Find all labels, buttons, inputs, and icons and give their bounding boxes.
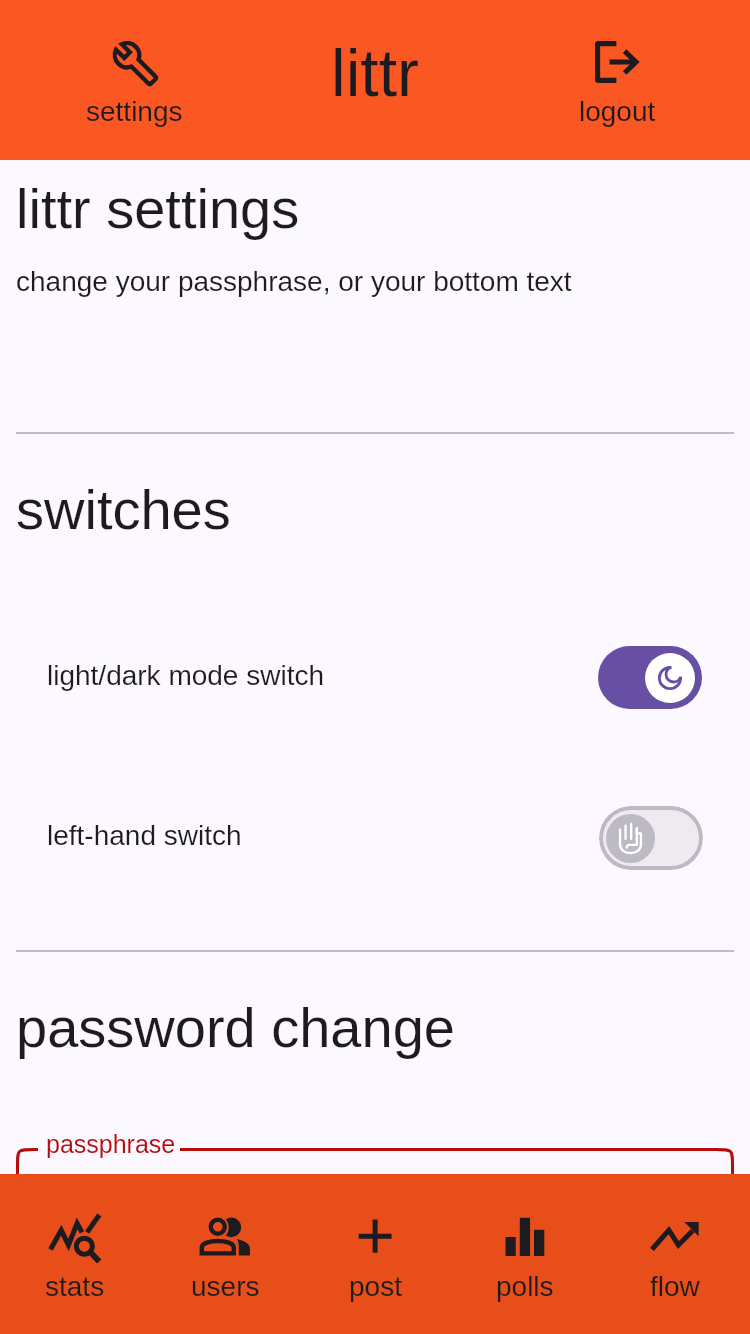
staticText: light/dark mode switch <box>47 660 325 691</box>
staticText: passphrase <box>46 1130 176 1158</box>
button[interactable]: polls <box>450 1174 600 1334</box>
button[interactable]: flow <box>600 1174 750 1334</box>
button[interactable]: settings <box>82 26 186 134</box>
button[interactable]: Toggle left-hand mode <box>599 806 703 870</box>
staticText: left-hand switch <box>47 820 242 851</box>
staticText: change your passphrase, or your bottom t… <box>16 266 572 297</box>
staticText: switches <box>16 478 231 541</box>
staticText: post <box>349 1271 402 1302</box>
button[interactable] <box>16 1148 734 1268</box>
staticText: users <box>191 1271 260 1302</box>
button[interactable]: stats <box>0 1174 150 1334</box>
button[interactable]: users <box>150 1174 300 1334</box>
staticText: settings <box>86 96 183 127</box>
button[interactable]: logout <box>565 26 669 134</box>
staticText: password change <box>16 996 455 1059</box>
button[interactable]: left-hand switch <box>0 790 750 885</box>
staticText: logout <box>579 96 656 127</box>
button[interactable]: Toggle light/dark mode <box>598 646 702 709</box>
staticText: stats <box>45 1271 105 1302</box>
staticText: littr <box>331 36 419 110</box>
staticText: flow <box>650 1271 700 1302</box>
staticText: polls <box>496 1271 554 1302</box>
button[interactable]: light/dark mode switch <box>0 630 750 725</box>
staticText: littr settings <box>16 177 300 240</box>
button[interactable]: post <box>300 1174 450 1334</box>
